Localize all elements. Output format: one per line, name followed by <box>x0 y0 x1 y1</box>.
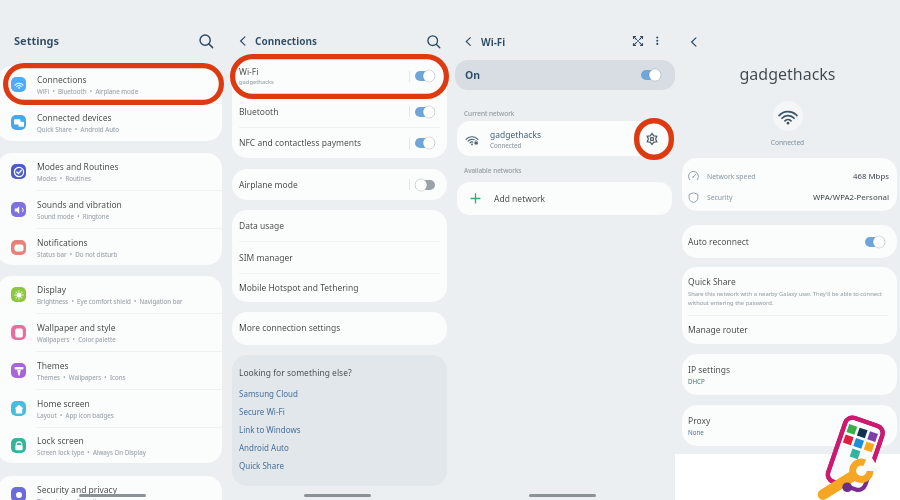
button[interactable]: NFC and contactless payments <box>232 128 447 158</box>
staticText: Sound mode • Ringtone <box>37 212 110 220</box>
staticText: Settings <box>14 33 60 48</box>
staticText: Quick Share • Android Auto <box>37 125 120 133</box>
staticText: More connection settings <box>239 322 341 334</box>
button[interactable]: Mobile Hotspot and Tethering <box>232 274 447 302</box>
staticText: Current network <box>464 109 515 118</box>
button[interactable]: Proxy <box>682 405 897 446</box>
staticText: Wallpapers • Color palette <box>37 335 116 343</box>
staticText: On <box>465 68 481 82</box>
staticText: Auto reconnect <box>688 236 865 248</box>
staticText: Status bar • Do not disturb <box>37 250 118 258</box>
staticText: Lock screen <box>37 435 84 447</box>
staticText: Secure Wi-Fi <box>239 406 285 417</box>
button[interactable]: Data usage <box>232 210 447 241</box>
staticText: Network speed <box>707 172 853 181</box>
button[interactable]: Wi-Fi <box>232 57 447 95</box>
button[interactable]: Network speed <box>682 166 897 187</box>
button[interactable]: Back <box>686 34 702 50</box>
button[interactable]: Scan QR code <box>632 35 644 47</box>
staticText: gadgethacks <box>239 78 274 86</box>
button[interactable]: Search <box>198 33 215 50</box>
staticText: Wallpaper and style <box>37 322 116 334</box>
staticText: gadgethacks <box>490 129 542 141</box>
staticText: Quick Share <box>239 460 284 471</box>
staticText: Themes • Wallpapers • Icons <box>37 373 126 381</box>
staticText: Connected devices <box>37 112 112 124</box>
staticText: Security and privacy <box>37 484 118 496</box>
staticText: Connected <box>490 141 522 149</box>
staticText: Display <box>37 284 66 296</box>
button[interactable]: Home screen <box>0 390 222 427</box>
staticText: Screen lock type • Always On Display <box>37 448 146 456</box>
staticText: Looking for something else? <box>239 367 352 379</box>
staticText: Connections <box>37 74 87 86</box>
staticText: Proxy <box>688 415 711 427</box>
staticText: Security <box>707 193 813 202</box>
staticText: Connected <box>675 138 900 147</box>
staticText: Share this network with a nearby Galaxy … <box>688 290 887 307</box>
button[interactable]: Bluetooth <box>232 96 447 127</box>
button[interactable]: Lock screen <box>0 428 222 463</box>
staticText: Available networks <box>464 166 522 175</box>
staticText: Airplane mode <box>239 179 298 191</box>
staticText: Wi-Fi <box>481 35 506 49</box>
staticText: Connections <box>255 34 317 48</box>
button[interactable]: Add network <box>457 182 672 215</box>
staticText: gadgethacks <box>675 63 900 85</box>
staticText: IP settings <box>688 364 730 376</box>
button[interactable]: gadgethacks <box>457 121 672 156</box>
staticText: Add network <box>494 193 546 205</box>
staticText: WPA/WPA2-Personal <box>813 192 890 203</box>
staticText: Samsung Cloud <box>239 388 298 399</box>
staticText: Modes and Routines <box>37 161 119 173</box>
button[interactable]: Search <box>426 34 442 50</box>
button[interactable]: IP settings <box>682 354 897 395</box>
staticText: NFC and contactless payments <box>239 137 362 149</box>
button[interactable]: Quick Share <box>239 456 284 474</box>
button[interactable]: SIM manager <box>232 242 447 273</box>
button[interactable]: Back <box>235 33 251 49</box>
staticText: Sounds and vibration <box>37 199 122 211</box>
button[interactable]: Display <box>0 276 222 313</box>
staticText: Layout • App icon badges <box>37 411 114 419</box>
button[interactable]: Connected devices <box>0 104 222 141</box>
staticText: None <box>688 428 704 436</box>
staticText: WiFi • Bluetooth • Airplane mode <box>37 87 139 95</box>
staticText: Manage router <box>688 324 748 336</box>
button[interactable]: Notifications <box>0 229 222 265</box>
staticText: Brightness • Eye comfort shield • Naviga… <box>37 297 183 305</box>
staticText: Notifications <box>37 237 88 249</box>
button[interactable]: Back <box>461 34 476 49</box>
staticText: 468 Mbps <box>853 171 890 182</box>
button[interactable]: Wallpaper and style <box>0 314 222 351</box>
staticText: DHCP <box>688 377 705 385</box>
button[interactable]: Security <box>682 187 897 208</box>
staticText: SIM manager <box>239 252 293 264</box>
button[interactable]: Android Auto <box>239 438 289 456</box>
button[interactable]: Link to Windows <box>239 420 301 438</box>
button[interactable]: On <box>455 60 675 90</box>
staticText: Bluetooth <box>239 106 279 118</box>
button[interactable]: Themes <box>0 352 222 389</box>
staticText: Link to Windows <box>239 424 301 435</box>
button[interactable]: Network settings <box>646 133 658 145</box>
button[interactable]: Connections <box>0 66 222 103</box>
staticText: Android Auto <box>239 442 289 453</box>
button[interactable]: Auto reconnect <box>682 225 897 258</box>
button[interactable]: Secure Wi-Fi <box>239 402 285 420</box>
button[interactable]: Security and privacy <box>0 476 222 500</box>
button[interactable]: Manage router <box>682 316 897 344</box>
button[interactable]: Modes and Routines <box>0 153 222 190</box>
staticText: Quick Share <box>688 276 736 288</box>
button[interactable]: Airplane mode <box>232 169 447 200</box>
staticText: Biometrics • Security <box>37 497 100 500</box>
button[interactable]: Quick Share <box>682 267 897 307</box>
staticText: Modes • Routines <box>37 174 91 182</box>
staticText: Wi-Fi <box>239 66 259 78</box>
staticText: Home screen <box>37 398 90 410</box>
staticText: Mobile Hotspot and Tethering <box>239 282 359 294</box>
button[interactable]: More connection settings <box>232 312 447 343</box>
button[interactable]: Sounds and vibration <box>0 191 222 228</box>
button[interactable]: Samsung Cloud <box>239 384 298 402</box>
button[interactable]: More options <box>650 33 664 47</box>
